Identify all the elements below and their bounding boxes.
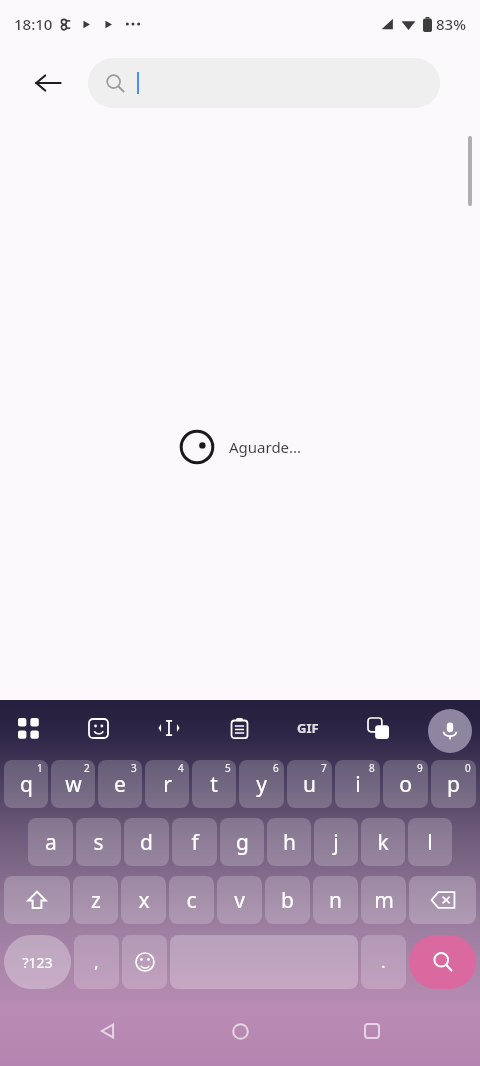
staticText: 5 bbox=[225, 761, 231, 775]
button[interactable]: q bbox=[4, 760, 48, 808]
button[interactable] bbox=[4, 876, 70, 924]
staticText: , bbox=[94, 951, 99, 973]
staticText: l bbox=[427, 828, 433, 857]
staticText: b bbox=[281, 886, 294, 915]
staticText: 8 bbox=[369, 761, 375, 775]
staticText: d bbox=[140, 828, 153, 857]
staticText: a bbox=[45, 828, 57, 857]
button[interactable]: Back bbox=[20, 55, 76, 111]
button[interactable]: c bbox=[169, 876, 214, 924]
staticText: m bbox=[374, 886, 394, 915]
button[interactable]: z bbox=[73, 876, 118, 924]
staticText: s bbox=[93, 828, 104, 857]
staticText: e bbox=[114, 770, 126, 799]
button[interactable]: f bbox=[172, 818, 217, 866]
button[interactable]: d bbox=[124, 818, 169, 866]
staticText: w bbox=[65, 770, 82, 799]
button[interactable]: g bbox=[220, 818, 264, 866]
staticText: k bbox=[377, 828, 389, 857]
button[interactable]: j bbox=[314, 818, 358, 866]
staticText: q bbox=[20, 770, 33, 799]
staticText: o bbox=[399, 770, 412, 799]
staticText: z bbox=[91, 886, 101, 915]
button[interactable]: x bbox=[121, 876, 166, 924]
button[interactable]: k bbox=[361, 818, 405, 866]
button[interactable] bbox=[409, 876, 476, 924]
staticText: Aguarde... bbox=[229, 437, 302, 457]
button[interactable]: Translate bbox=[358, 708, 398, 748]
button[interactable]: e bbox=[98, 760, 142, 808]
button[interactable]: Stickers bbox=[78, 708, 118, 748]
button[interactable]: n bbox=[313, 876, 358, 924]
button[interactable]: y bbox=[239, 760, 284, 808]
button[interactable]: Back bbox=[84, 1007, 132, 1055]
button[interactable]: Search bbox=[409, 935, 476, 989]
staticText: v bbox=[234, 886, 245, 915]
staticText: c bbox=[186, 886, 197, 915]
staticText: n bbox=[329, 886, 342, 915]
button[interactable] bbox=[122, 935, 167, 989]
staticText: 0 bbox=[465, 761, 471, 775]
staticText: y bbox=[256, 770, 267, 799]
button[interactable]: h bbox=[267, 818, 311, 866]
button[interactable]: Home bbox=[216, 1007, 264, 1055]
staticText: GIF bbox=[297, 719, 319, 737]
staticText: 18:10 bbox=[14, 14, 53, 34]
button[interactable]: . bbox=[361, 935, 406, 989]
button[interactable]: a bbox=[28, 818, 73, 866]
staticText: 7 bbox=[321, 761, 327, 775]
staticText: h bbox=[283, 828, 296, 857]
staticText: 6 bbox=[273, 761, 279, 775]
button[interactable]: p bbox=[431, 760, 476, 808]
button[interactable]: t bbox=[192, 760, 236, 808]
staticText: t bbox=[210, 770, 218, 799]
button[interactable]: Recent apps bbox=[348, 1007, 396, 1055]
staticText: . bbox=[381, 951, 386, 973]
button[interactable]: v bbox=[217, 876, 262, 924]
button[interactable]: r bbox=[145, 760, 189, 808]
staticText: 4 bbox=[178, 761, 184, 775]
button[interactable]: Text editing bbox=[149, 708, 189, 748]
button[interactable]: u bbox=[287, 760, 332, 808]
button[interactable]: i bbox=[335, 760, 380, 808]
staticText: i bbox=[355, 770, 361, 799]
button[interactable]: Clipboard bbox=[219, 708, 259, 748]
button[interactable]: l bbox=[408, 818, 452, 866]
button[interactable]: Apps bbox=[8, 708, 48, 748]
button[interactable]: Voice input bbox=[428, 709, 472, 753]
button[interactable]: o bbox=[383, 760, 428, 808]
staticText: 3 bbox=[131, 761, 137, 775]
button[interactable]: GIF bbox=[288, 708, 328, 748]
button[interactable]: ?123 bbox=[4, 935, 71, 989]
button[interactable]: m bbox=[361, 876, 406, 924]
button[interactable]: b bbox=[265, 876, 310, 924]
button[interactable] bbox=[170, 935, 358, 989]
staticText: 9 bbox=[417, 761, 423, 775]
button[interactable]: w bbox=[51, 760, 95, 808]
button[interactable]: , bbox=[74, 935, 119, 989]
button[interactable]: s bbox=[76, 818, 121, 866]
button[interactable] bbox=[88, 58, 440, 108]
staticText: g bbox=[236, 828, 249, 857]
staticText: j bbox=[333, 828, 339, 857]
staticText: x bbox=[138, 886, 150, 915]
staticText: r bbox=[163, 770, 172, 799]
staticText: 1 bbox=[37, 761, 43, 775]
staticText: 2 bbox=[84, 761, 90, 775]
staticText: f bbox=[191, 828, 199, 857]
staticText: ?123 bbox=[22, 953, 53, 972]
staticText: p bbox=[447, 770, 460, 799]
staticText: u bbox=[303, 770, 316, 799]
staticText: 83% bbox=[436, 14, 466, 34]
